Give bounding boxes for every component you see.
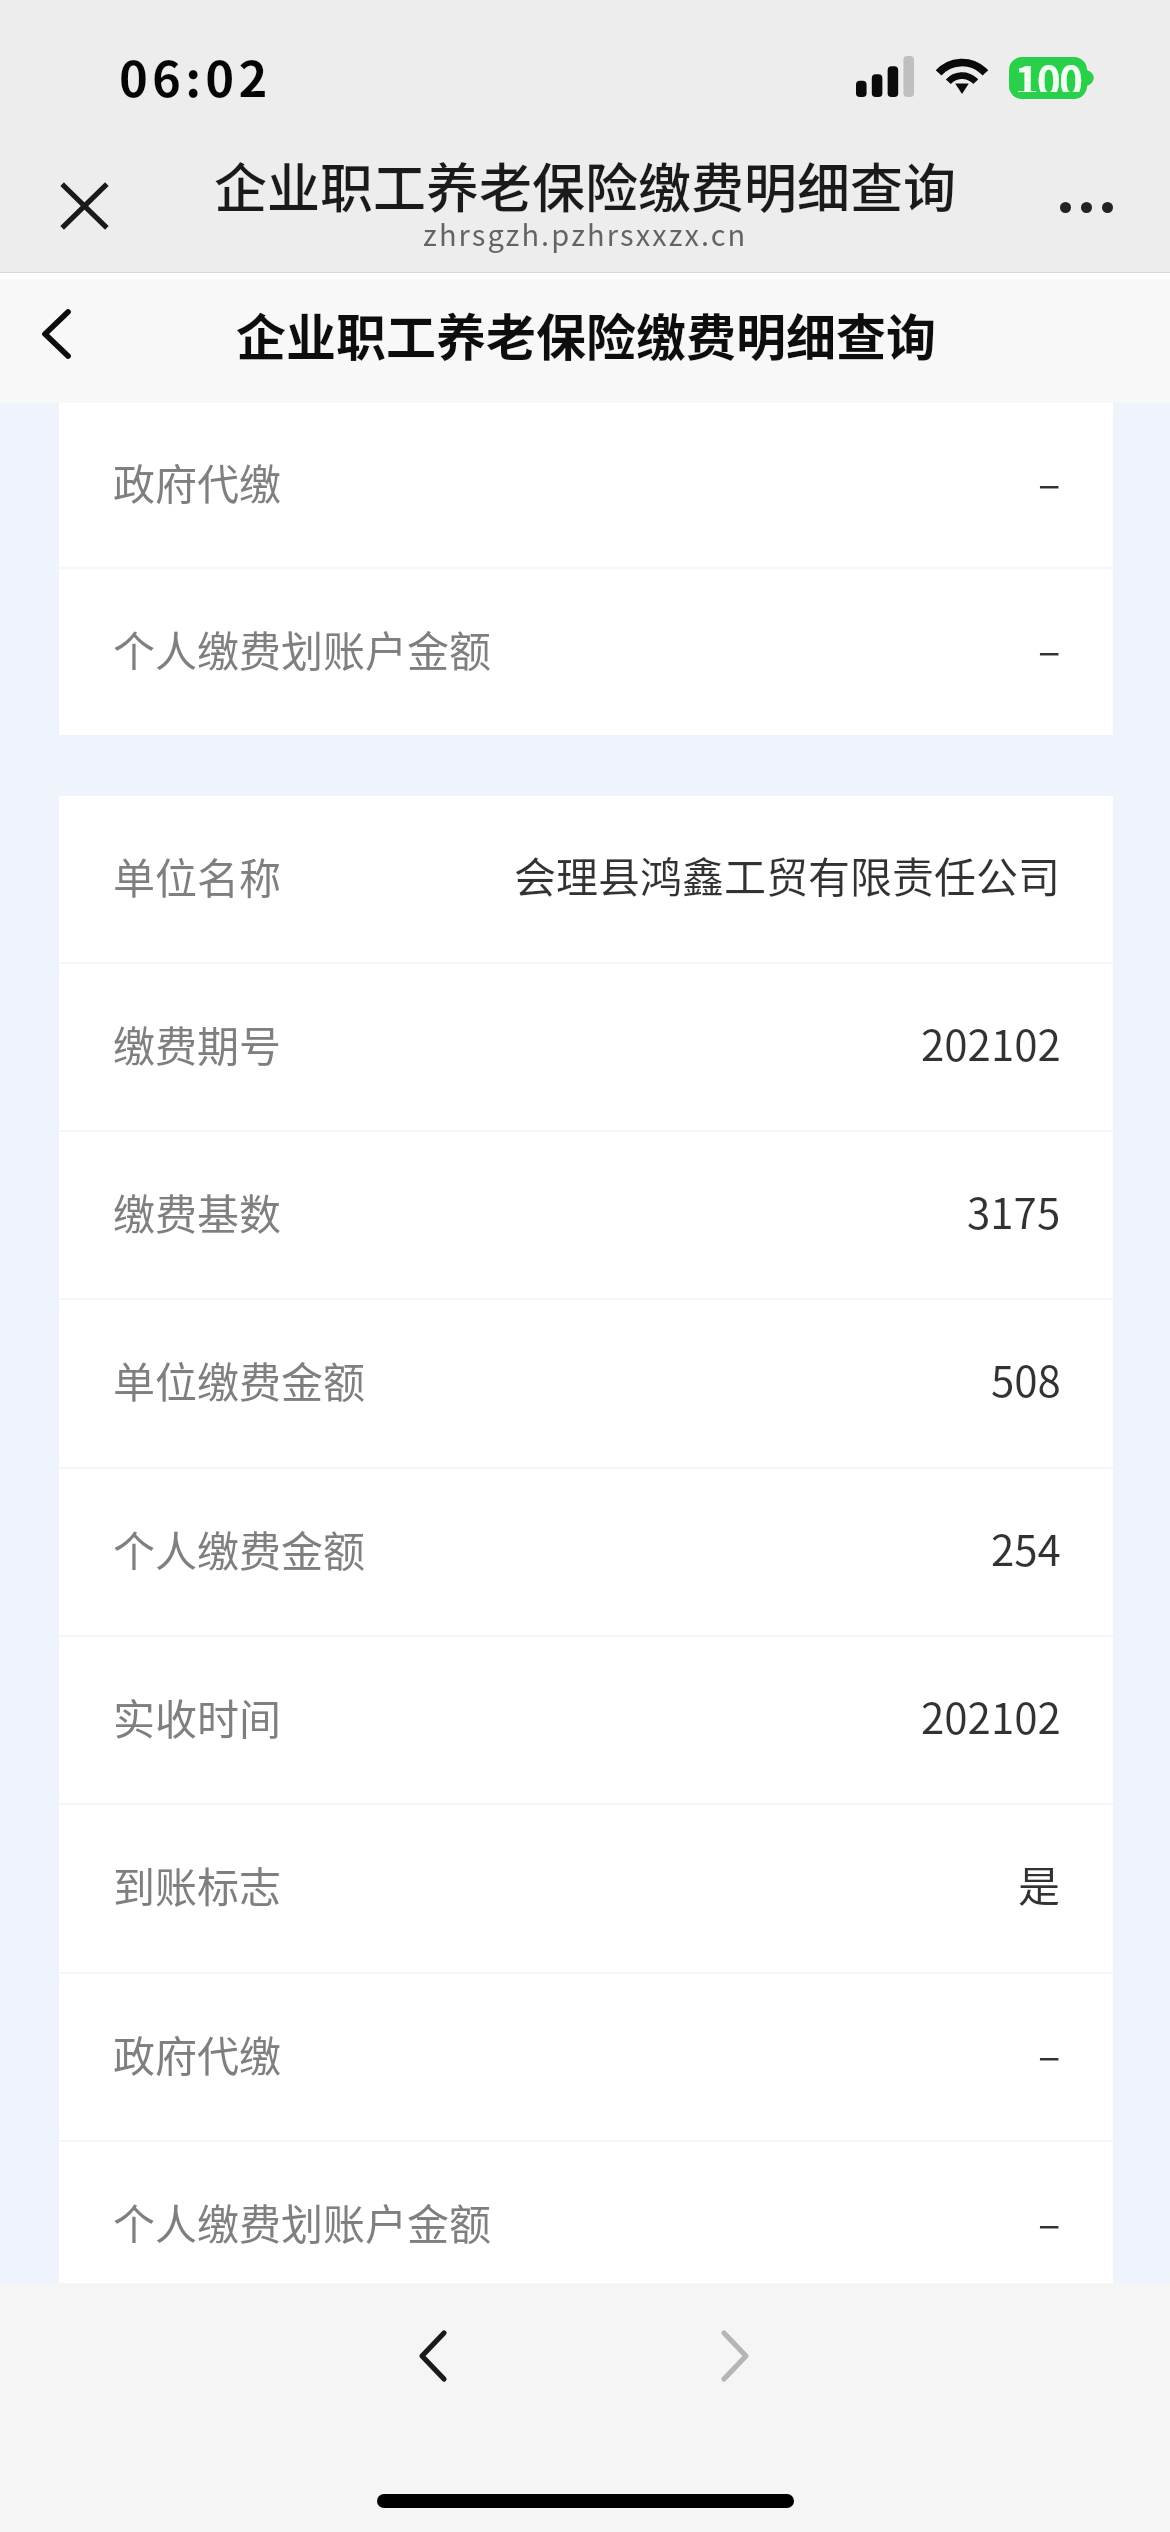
staticText: – <box>1038 617 1061 678</box>
button[interactable]: 个人缴费划账户金额 <box>59 2142 1113 2308</box>
staticText: 100 <box>1015 57 1082 92</box>
staticText: 个人缴费划账户金额 <box>113 2191 492 2252</box>
button[interactable]: 缴费期号 <box>59 964 1113 1130</box>
staticText: 会理县鸿鑫工贸有限责任公司 <box>514 844 1061 905</box>
staticText: 单位缴费金额 <box>113 1349 366 1410</box>
staticText: 个人缴费金额 <box>113 1518 366 1579</box>
staticText: – <box>1038 450 1061 511</box>
button[interactable]: 单位名称 <box>59 796 1113 962</box>
button[interactable]: 缴费基数 <box>59 1132 1113 1298</box>
staticText: 缴费基数 <box>113 1181 282 1242</box>
staticText: 实收时间 <box>113 1686 282 1747</box>
staticText: 政府代缴 <box>113 2023 282 2084</box>
staticText: 是 <box>1018 1853 1061 1914</box>
staticText: 政府代缴 <box>113 451 282 512</box>
button[interactable]: 政府代缴 <box>59 403 1113 567</box>
button[interactable]: Back <box>18 296 94 372</box>
button[interactable]: 单位缴费金额 <box>59 1300 1113 1467</box>
staticText: – <box>1038 2190 1061 2251</box>
staticText: 企业职工养老保险缴费明细查询 <box>214 147 956 224</box>
staticText: 06:02 <box>119 40 272 111</box>
staticText: 企业职工养老保险缴费明细查询 <box>236 298 936 370</box>
button[interactable]: Forward <box>687 2308 783 2404</box>
button[interactable]: Close <box>46 168 122 244</box>
staticText: 202102 <box>921 1012 1061 1073</box>
button[interactable]: More options <box>1039 171 1133 243</box>
staticText: 202102 <box>921 1685 1061 1746</box>
button[interactable]: 到账标志 <box>59 1805 1113 1972</box>
staticText: 508 <box>991 1348 1061 1409</box>
staticText: 到账标志 <box>113 1854 282 1915</box>
staticText: – <box>1038 2022 1061 2083</box>
staticText: 3175 <box>967 1180 1061 1241</box>
button[interactable]: 个人缴费划账户金额 <box>59 569 1113 735</box>
staticText: zhrsgzh.pzhrsxxzx.cn <box>423 212 748 254</box>
staticText: 单位名称 <box>113 845 282 906</box>
staticText: 个人缴费划账户金额 <box>113 618 492 679</box>
staticText: 缴费期号 <box>113 1013 282 1074</box>
button[interactable]: 实收时间 <box>59 1637 1113 1803</box>
button[interactable]: 个人缴费金额 <box>59 1469 1113 1635</box>
staticText: 254 <box>991 1517 1061 1578</box>
button[interactable]: 政府代缴 <box>59 1974 1113 2140</box>
button[interactable]: Back <box>385 2308 481 2404</box>
